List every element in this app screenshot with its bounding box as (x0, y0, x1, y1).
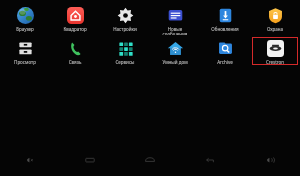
staticText: Обновления (200, 26, 250, 32)
staticText: Квадратор (50, 26, 100, 32)
staticText: Новые сообщения (150, 26, 200, 35)
button[interactable]: Volume up (240, 148, 300, 172)
button[interactable]: Квадратор (50, 4, 100, 32)
button[interactable]: Recent apps (60, 148, 120, 172)
button[interactable]: Просмотр (0, 37, 50, 65)
button[interactable]: Умный дом (150, 37, 200, 65)
button[interactable]: Обновления (200, 4, 250, 32)
button[interactable]: Crestron (252, 37, 298, 65)
button[interactable]: Новые сообщения (150, 4, 200, 35)
staticText: Умный дом (150, 59, 200, 65)
button[interactable]: Back (180, 148, 240, 172)
button[interactable]: Охрана (250, 4, 300, 32)
staticText: Archive (200, 59, 250, 65)
button[interactable]: Браузер (0, 4, 50, 32)
button[interactable]: Связь (50, 37, 100, 65)
button[interactable]: Настройки (100, 4, 150, 32)
staticText: Crestron (252, 59, 298, 65)
button[interactable]: Volume down (0, 148, 60, 172)
staticText: Связь (50, 59, 100, 65)
staticText: Браузер (0, 26, 50, 32)
staticText: Сервисы (100, 59, 150, 65)
staticText: Просмотр (0, 59, 50, 65)
button[interactable]: Сервисы (100, 37, 150, 65)
button[interactable]: Archive (200, 37, 250, 65)
staticText: Настройки (100, 26, 150, 32)
staticText: Охрана (250, 26, 300, 32)
button[interactable]: Home (120, 148, 180, 172)
